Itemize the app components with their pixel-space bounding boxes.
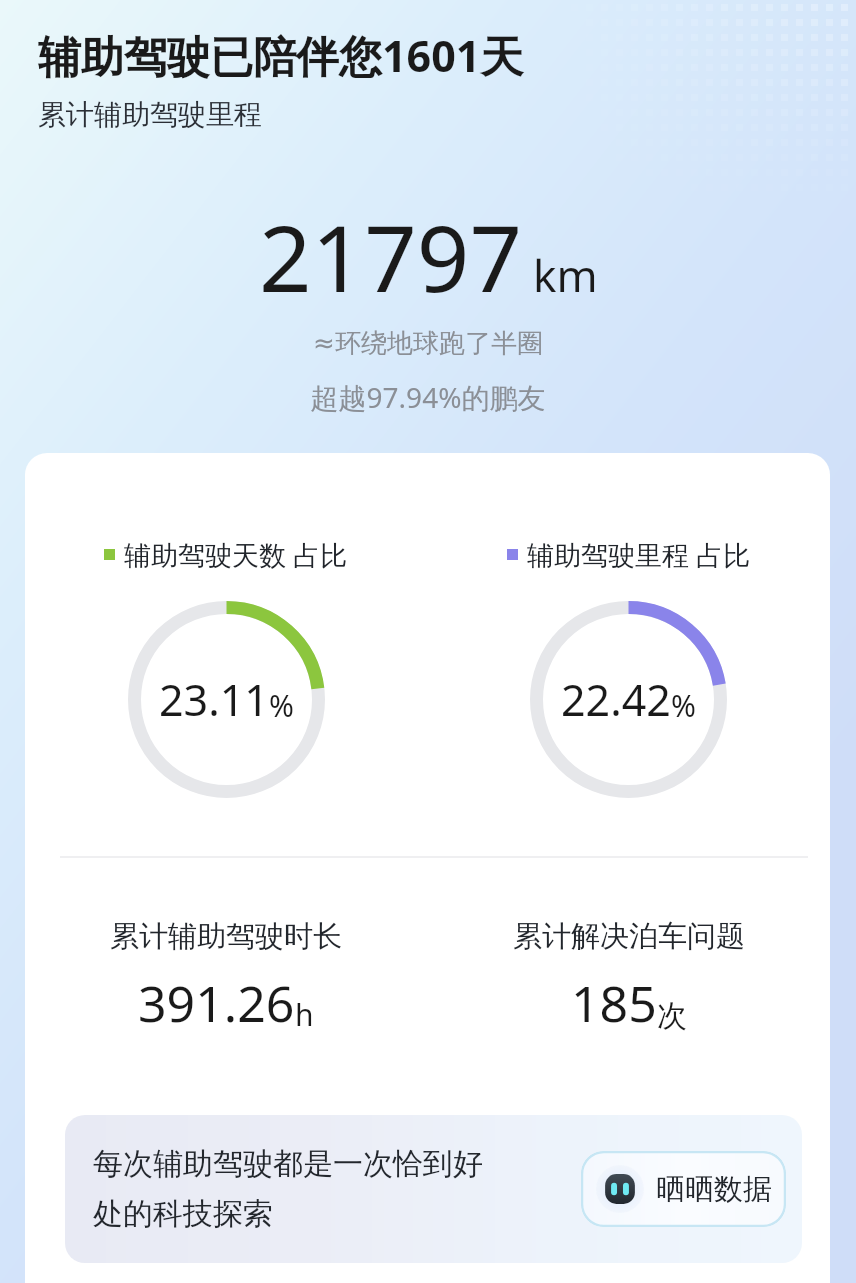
staticText: % [671, 685, 696, 726]
staticText: 累计辅助驾驶时长 [110, 918, 342, 955]
staticText: 21797 [259, 194, 523, 319]
staticText: 辅助驾驶里程 占比 [527, 536, 751, 573]
staticText: 次 [657, 997, 687, 1035]
staticText: ≈环绕地球跑了半圈 [0, 327, 856, 360]
other: Share data robot [596, 1165, 644, 1213]
staticText: 辅助驾驶已陪伴您1601天 [38, 26, 524, 85]
staticText: 22.42 [561, 670, 671, 729]
staticText: 185 [571, 969, 657, 1037]
staticText: 处的科技探索 [93, 1195, 273, 1233]
button[interactable]: Share data robot [581, 1151, 786, 1227]
staticText: 辅助驾驶天数 占比 [124, 536, 348, 573]
staticText: 每次辅助驾驶都是一次恰到好 [93, 1145, 483, 1183]
staticText: h [295, 994, 314, 1035]
staticText: % [269, 685, 294, 726]
staticText: 累计辅助驾驶里程 [38, 97, 262, 132]
staticText: 23.11 [159, 670, 269, 729]
staticText: 晒晒数据 [656, 1171, 772, 1208]
staticText: 累计解决泊车问题 [513, 918, 745, 955]
staticText: km [533, 245, 598, 305]
staticText: 391.26 [138, 969, 295, 1037]
staticText: 超越97.94%的鹏友 [0, 378, 856, 416]
